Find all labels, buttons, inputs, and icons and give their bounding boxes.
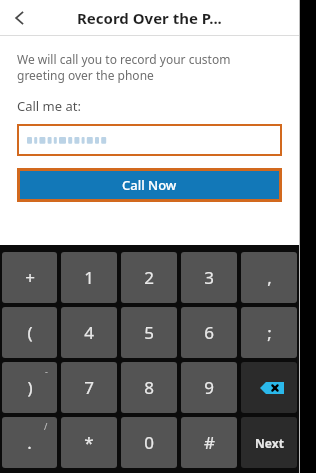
button[interactable]: +	[2, 252, 57, 303]
button[interactable]: ;	[241, 307, 297, 358]
staticText: .	[27, 431, 32, 454]
staticText: 6	[204, 321, 214, 344]
button[interactable]: Backspace	[241, 362, 297, 413]
button[interactable]: 6	[181, 307, 237, 358]
button[interactable]: #	[181, 417, 237, 468]
staticText: Call Now	[122, 176, 177, 194]
button[interactable]: 1	[61, 252, 117, 303]
button[interactable]: 3	[181, 252, 237, 303]
staticText: /	[44, 420, 48, 432]
staticText: 8	[144, 376, 154, 399]
button[interactable]: )	[2, 362, 57, 413]
staticText: Call me at:	[17, 97, 81, 115]
button[interactable]: 4	[61, 307, 117, 358]
button[interactable]: ,	[241, 252, 297, 303]
staticText: )	[27, 376, 33, 399]
button[interactable]: 9	[181, 362, 237, 413]
staticText: 2	[144, 266, 154, 289]
button[interactable]: 8	[121, 362, 177, 413]
button[interactable]: *	[61, 417, 117, 468]
staticText: ;	[267, 321, 272, 344]
staticText: 3	[204, 266, 214, 289]
staticText: We will call you to record your custom g…	[17, 51, 231, 83]
staticText: ,	[267, 266, 272, 289]
button[interactable]: 0	[121, 417, 177, 468]
staticText: 9	[204, 376, 214, 399]
button[interactable]: 5	[121, 307, 177, 358]
button[interactable]	[19, 126, 280, 154]
staticText: *	[84, 431, 94, 454]
staticText: 7	[84, 376, 94, 399]
staticText: (	[27, 321, 33, 344]
button[interactable]: Call Now	[20, 171, 279, 199]
staticText: 5	[144, 321, 154, 344]
staticText: #	[204, 431, 215, 454]
staticText: 1	[84, 266, 94, 289]
staticText: 0	[144, 431, 154, 454]
staticText: Record Over the P...	[77, 8, 222, 28]
button[interactable]: .	[2, 417, 57, 468]
staticText: 4	[84, 321, 94, 344]
staticText: Next	[255, 435, 284, 451]
button[interactable]: (	[2, 307, 57, 358]
button[interactable]: 2	[121, 252, 177, 303]
staticText: -	[45, 365, 48, 377]
staticText: +	[25, 266, 35, 289]
button[interactable]: Next	[241, 417, 297, 468]
button[interactable]: 7	[61, 362, 117, 413]
button[interactable]: Back	[0, 0, 40, 36]
